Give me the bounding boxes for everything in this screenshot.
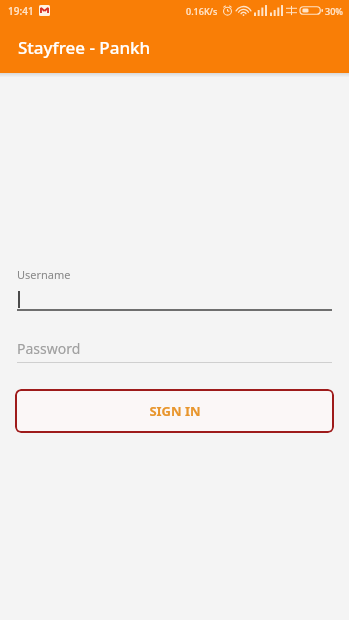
staticText: Password [17,339,81,358]
staticText: 19:41 [8,4,34,18]
staticText: Stayfree - Pankh [18,36,151,59]
staticText: 0.16K/s [186,5,218,17]
staticText: Username [17,267,71,282]
button[interactable]: Username [17,267,332,311]
staticText: SIGN IN [149,402,201,420]
staticText: 30% [325,5,343,17]
button[interactable]: SIGN IN [15,389,334,433]
button[interactable]: Password [17,337,332,363]
